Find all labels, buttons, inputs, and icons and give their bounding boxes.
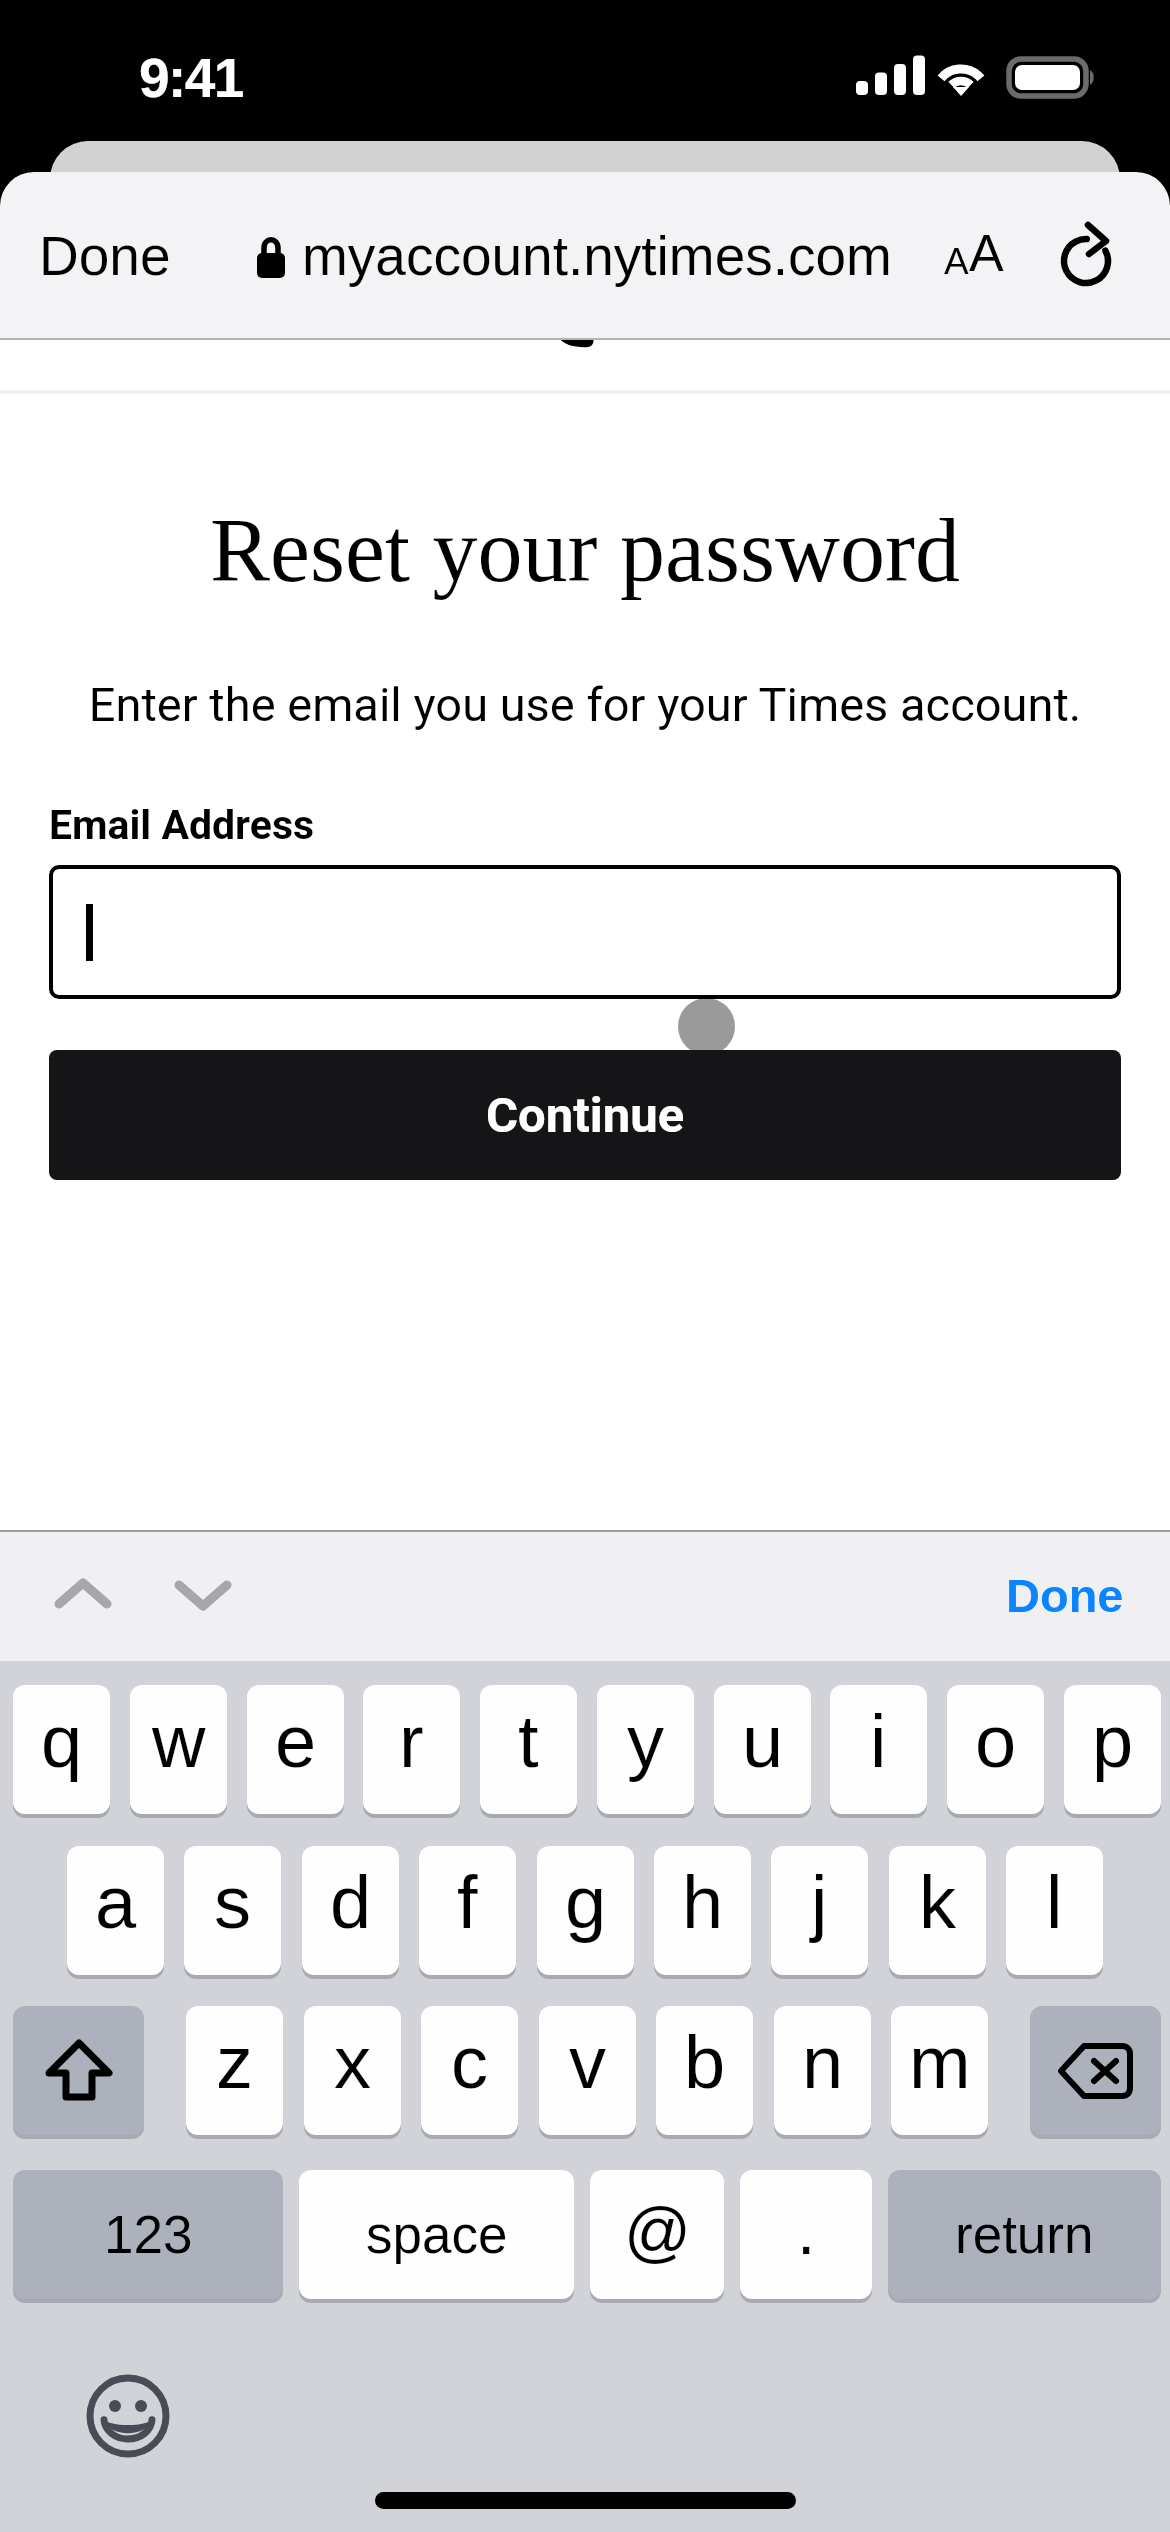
button[interactable]: e (247, 1685, 344, 1814)
button[interactable]: l (1006, 1846, 1103, 1975)
staticText: Enter the email you use for your Times a… (0, 677, 1170, 732)
button[interactable]: Reload page (1052, 219, 1124, 291)
staticText: k (919, 1861, 956, 1944)
staticText: i (870, 1700, 887, 1783)
button[interactable]: s (184, 1846, 281, 1975)
staticText: q (41, 1700, 83, 1783)
button[interactable]: . (740, 2170, 872, 2299)
button[interactable]: return (888, 2170, 1161, 2299)
button[interactable]: g (537, 1846, 634, 1975)
staticText: @ (624, 2194, 691, 2268)
button[interactable]: Emoji keyboard (87, 2375, 169, 2457)
button[interactable]: r (363, 1685, 460, 1814)
staticText: p (1092, 1700, 1134, 1783)
button[interactable]: Backspace (1030, 2006, 1161, 2135)
button[interactable]: a (67, 1846, 164, 1975)
staticText: m (909, 2021, 971, 2104)
staticText: A (944, 241, 969, 282)
button[interactable]: n (774, 2006, 871, 2135)
button[interactable]: y (597, 1685, 694, 1814)
button[interactable]: w (130, 1685, 227, 1814)
staticText: r (399, 1700, 424, 1783)
button[interactable] (49, 865, 1121, 999)
staticText: 9:41 (139, 47, 243, 108)
button[interactable]: j (771, 1846, 868, 1975)
button[interactable]: Next field (168, 1564, 238, 1634)
staticText: c (451, 2021, 488, 2104)
staticText: o (975, 1700, 1017, 1783)
button[interactable]: Previous field (48, 1564, 118, 1634)
button[interactable]: p (1064, 1685, 1161, 1814)
staticText: x (334, 2021, 371, 2104)
staticText: Continue (486, 1087, 685, 1144)
button[interactable]: k (889, 1846, 986, 1975)
button[interactable]: f (419, 1846, 516, 1975)
staticText: j (811, 1861, 828, 1944)
staticText: e (275, 1700, 317, 1783)
staticText: u (742, 1700, 784, 1783)
button[interactable]: i (830, 1685, 927, 1814)
button[interactable]: c (421, 2006, 518, 2135)
staticText: . (797, 2194, 816, 2268)
button[interactable]: space (299, 2170, 574, 2299)
button[interactable]: x (304, 2006, 401, 2135)
button[interactable]: Shift (13, 2006, 144, 2135)
button[interactable]: @ (590, 2170, 724, 2299)
staticText: n (802, 2021, 844, 2104)
staticText: z (216, 2021, 253, 2104)
staticText: f (457, 1861, 478, 1944)
button[interactable]: t (480, 1685, 577, 1814)
staticText: t (518, 1700, 539, 1783)
staticText: Email Address (49, 801, 315, 849)
staticText: h (682, 1861, 724, 1944)
staticText: b (684, 2021, 726, 2104)
button[interactable]: m (891, 2006, 988, 2135)
staticText: l (1046, 1861, 1063, 1944)
button[interactable]: Done (39, 225, 171, 286)
button[interactable]: b (656, 2006, 753, 2135)
staticText: v (569, 2021, 606, 2104)
button[interactable]: Continue (49, 1050, 1121, 1180)
staticText: w (152, 1700, 206, 1783)
button[interactable]: o (947, 1685, 1044, 1814)
button[interactable]: q (13, 1685, 110, 1814)
staticText: y (627, 1700, 664, 1783)
button[interactable]: myaccount.nytimes.com (256, 225, 892, 286)
staticText: s (214, 1861, 251, 1944)
staticText: space (366, 2205, 508, 2264)
button[interactable]: Done (1006, 1569, 1124, 1622)
staticText: Reset your password (0, 501, 1170, 601)
button[interactable]: u (714, 1685, 811, 1814)
button[interactable]: Text size options (940, 220, 1008, 286)
staticText: myaccount.nytimes.com (302, 225, 892, 286)
button[interactable]: d (302, 1846, 399, 1975)
button[interactable]: h (654, 1846, 751, 1975)
button[interactable]: 123 (13, 2170, 283, 2299)
button[interactable]: v (539, 2006, 636, 2135)
staticText: 123 (104, 2205, 193, 2264)
staticText: g (565, 1861, 607, 1944)
staticText: A (969, 224, 1004, 282)
staticText: return (955, 2205, 1094, 2264)
staticText: d (330, 1861, 372, 1944)
button[interactable]: z (186, 2006, 283, 2135)
staticText: a (95, 1861, 137, 1944)
